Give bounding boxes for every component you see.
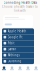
button[interactable]: Garmin [2, 46, 34, 52]
button[interactable]: Google Fit [2, 34, 34, 40]
button[interactable]: Insights [24, 64, 32, 72]
button[interactable]: Trackers [16, 64, 24, 72]
staticText: Apple Health [8, 29, 27, 33]
staticText: Garmin [8, 47, 17, 51]
button[interactable]: Fitbit [2, 40, 34, 46]
staticText: Choose a health tracker to [2, 5, 38, 8]
button[interactable]: Profile [32, 64, 40, 72]
staticText: Withings [8, 53, 20, 57]
button[interactable]: Oura Ring [2, 58, 34, 64]
staticText: Oura Ring [8, 59, 22, 63]
button[interactable]: Home [0, 64, 8, 72]
button[interactable]: Apple Health [2, 28, 34, 34]
staticText: Google Fit [8, 35, 23, 39]
staticText: Fitbit [8, 41, 15, 45]
button[interactable]: Activity [8, 64, 16, 72]
button[interactable]: Withings [2, 52, 34, 58]
staticText: link with [14, 9, 26, 12]
staticText: Connecting Health Data [3, 1, 36, 4]
